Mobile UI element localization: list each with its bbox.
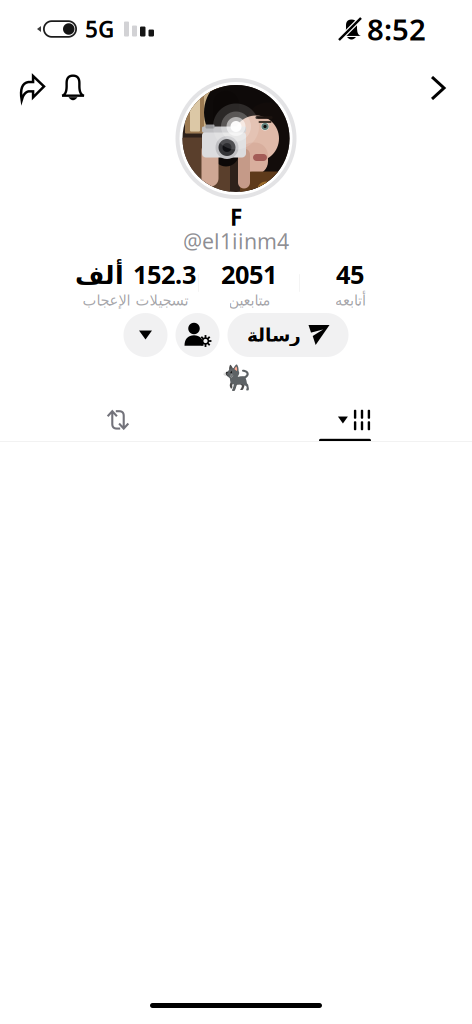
- staticText: 152.3 ألف: [74, 257, 195, 291]
- staticText: 45: [336, 257, 364, 291]
- button[interactable]: Find friends: [175, 313, 219, 357]
- button[interactable]: Back: [422, 67, 454, 109]
- button[interactable]: 2051: [199, 261, 299, 305]
- staticText: @el1iinm4: [183, 227, 289, 255]
- button[interactable]: Notifications: [52, 67, 94, 109]
- button[interactable]: Reposts: [0, 398, 236, 442]
- button[interactable]: Profile photo: [175, 78, 296, 199]
- staticText: تسجيلات الإعجاب: [82, 292, 188, 309]
- staticText: أتابعه: [334, 292, 365, 309]
- button[interactable]: More options: [123, 313, 167, 357]
- staticText: متابعين: [228, 292, 270, 309]
- staticText: 8:52: [367, 9, 426, 48]
- staticText: F: [230, 202, 242, 232]
- button[interactable]: Videos: [236, 398, 472, 442]
- staticText: 2051: [221, 257, 277, 291]
- button[interactable]: Share profile: [10, 67, 52, 109]
- button[interactable]: رسالة: [227, 313, 348, 357]
- staticText: 5G: [85, 14, 114, 44]
- staticText: 🐈‍⬛: [221, 364, 251, 392]
- button[interactable]: 152.3 ألف: [72, 261, 198, 305]
- button[interactable]: 45: [300, 261, 400, 305]
- staticText: رسالة: [246, 324, 300, 346]
